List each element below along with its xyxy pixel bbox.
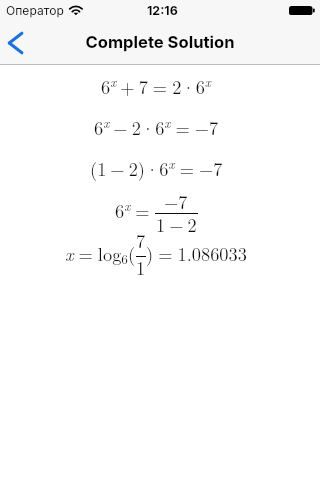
staticText: (1 − 2)·6x = −7 xyxy=(90,154,223,181)
staticText: 1 − 2 xyxy=(156,211,197,237)
staticText: ) = 1.086033 xyxy=(146,240,247,266)
staticText: −7 xyxy=(164,188,188,214)
staticText: 6x + 7 = 2·6x xyxy=(101,72,211,99)
button[interactable]: Back xyxy=(0,20,40,64)
staticText: 12:16 xyxy=(147,3,178,18)
staticText: Оператор xyxy=(6,3,64,18)
staticText: 6x = xyxy=(115,196,155,223)
staticText: 6x − 2·6x = −7 xyxy=(94,113,219,140)
staticText: Complete Solution xyxy=(85,32,235,52)
staticText: 1 xyxy=(136,254,146,280)
staticText: x = log6( xyxy=(65,240,136,268)
staticText: 7 xyxy=(136,227,146,253)
